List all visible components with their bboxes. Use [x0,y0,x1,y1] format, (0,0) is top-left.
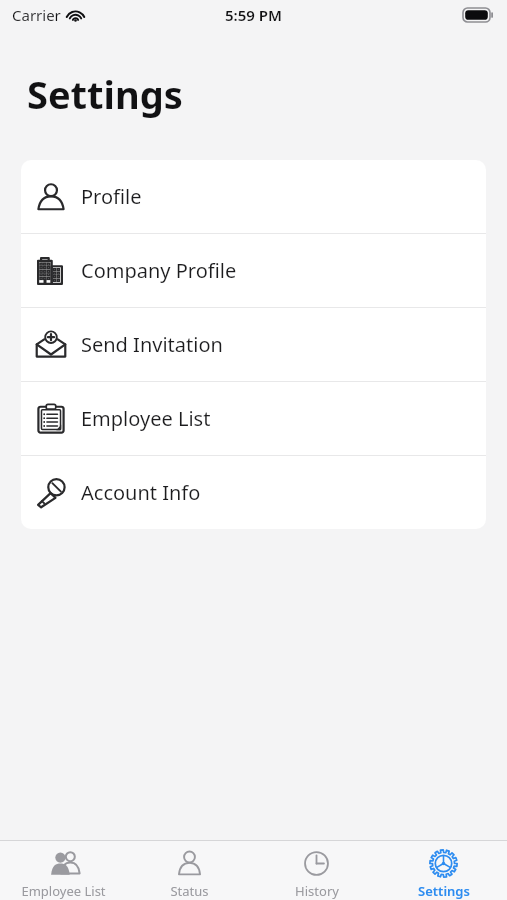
staticText: Employee List [81,405,211,432]
button[interactable]: Profile [21,160,486,233]
staticText: Employee List [21,882,106,900]
button[interactable]: History [253,841,380,900]
staticText: Carrier [12,5,61,25]
button[interactable]: Account Info [21,456,486,529]
staticText: Send Invitation [81,331,223,358]
button[interactable]: Employee List [0,841,126,900]
staticText: Profile [81,183,142,210]
staticText: Company Profile [81,257,237,284]
staticText: Status [170,882,209,900]
button[interactable]: Status [126,841,253,900]
staticText: Account Info [81,479,201,506]
staticText: History [295,882,339,900]
button[interactable]: Employee List [21,382,486,455]
button[interactable]: Send Invitation [21,308,486,381]
button[interactable]: Company Profile [21,234,486,307]
staticText: Settings [418,882,470,900]
staticText: Settings [27,68,183,120]
staticText: 5:59 PM [225,5,282,25]
button[interactable]: Settings [380,841,507,900]
